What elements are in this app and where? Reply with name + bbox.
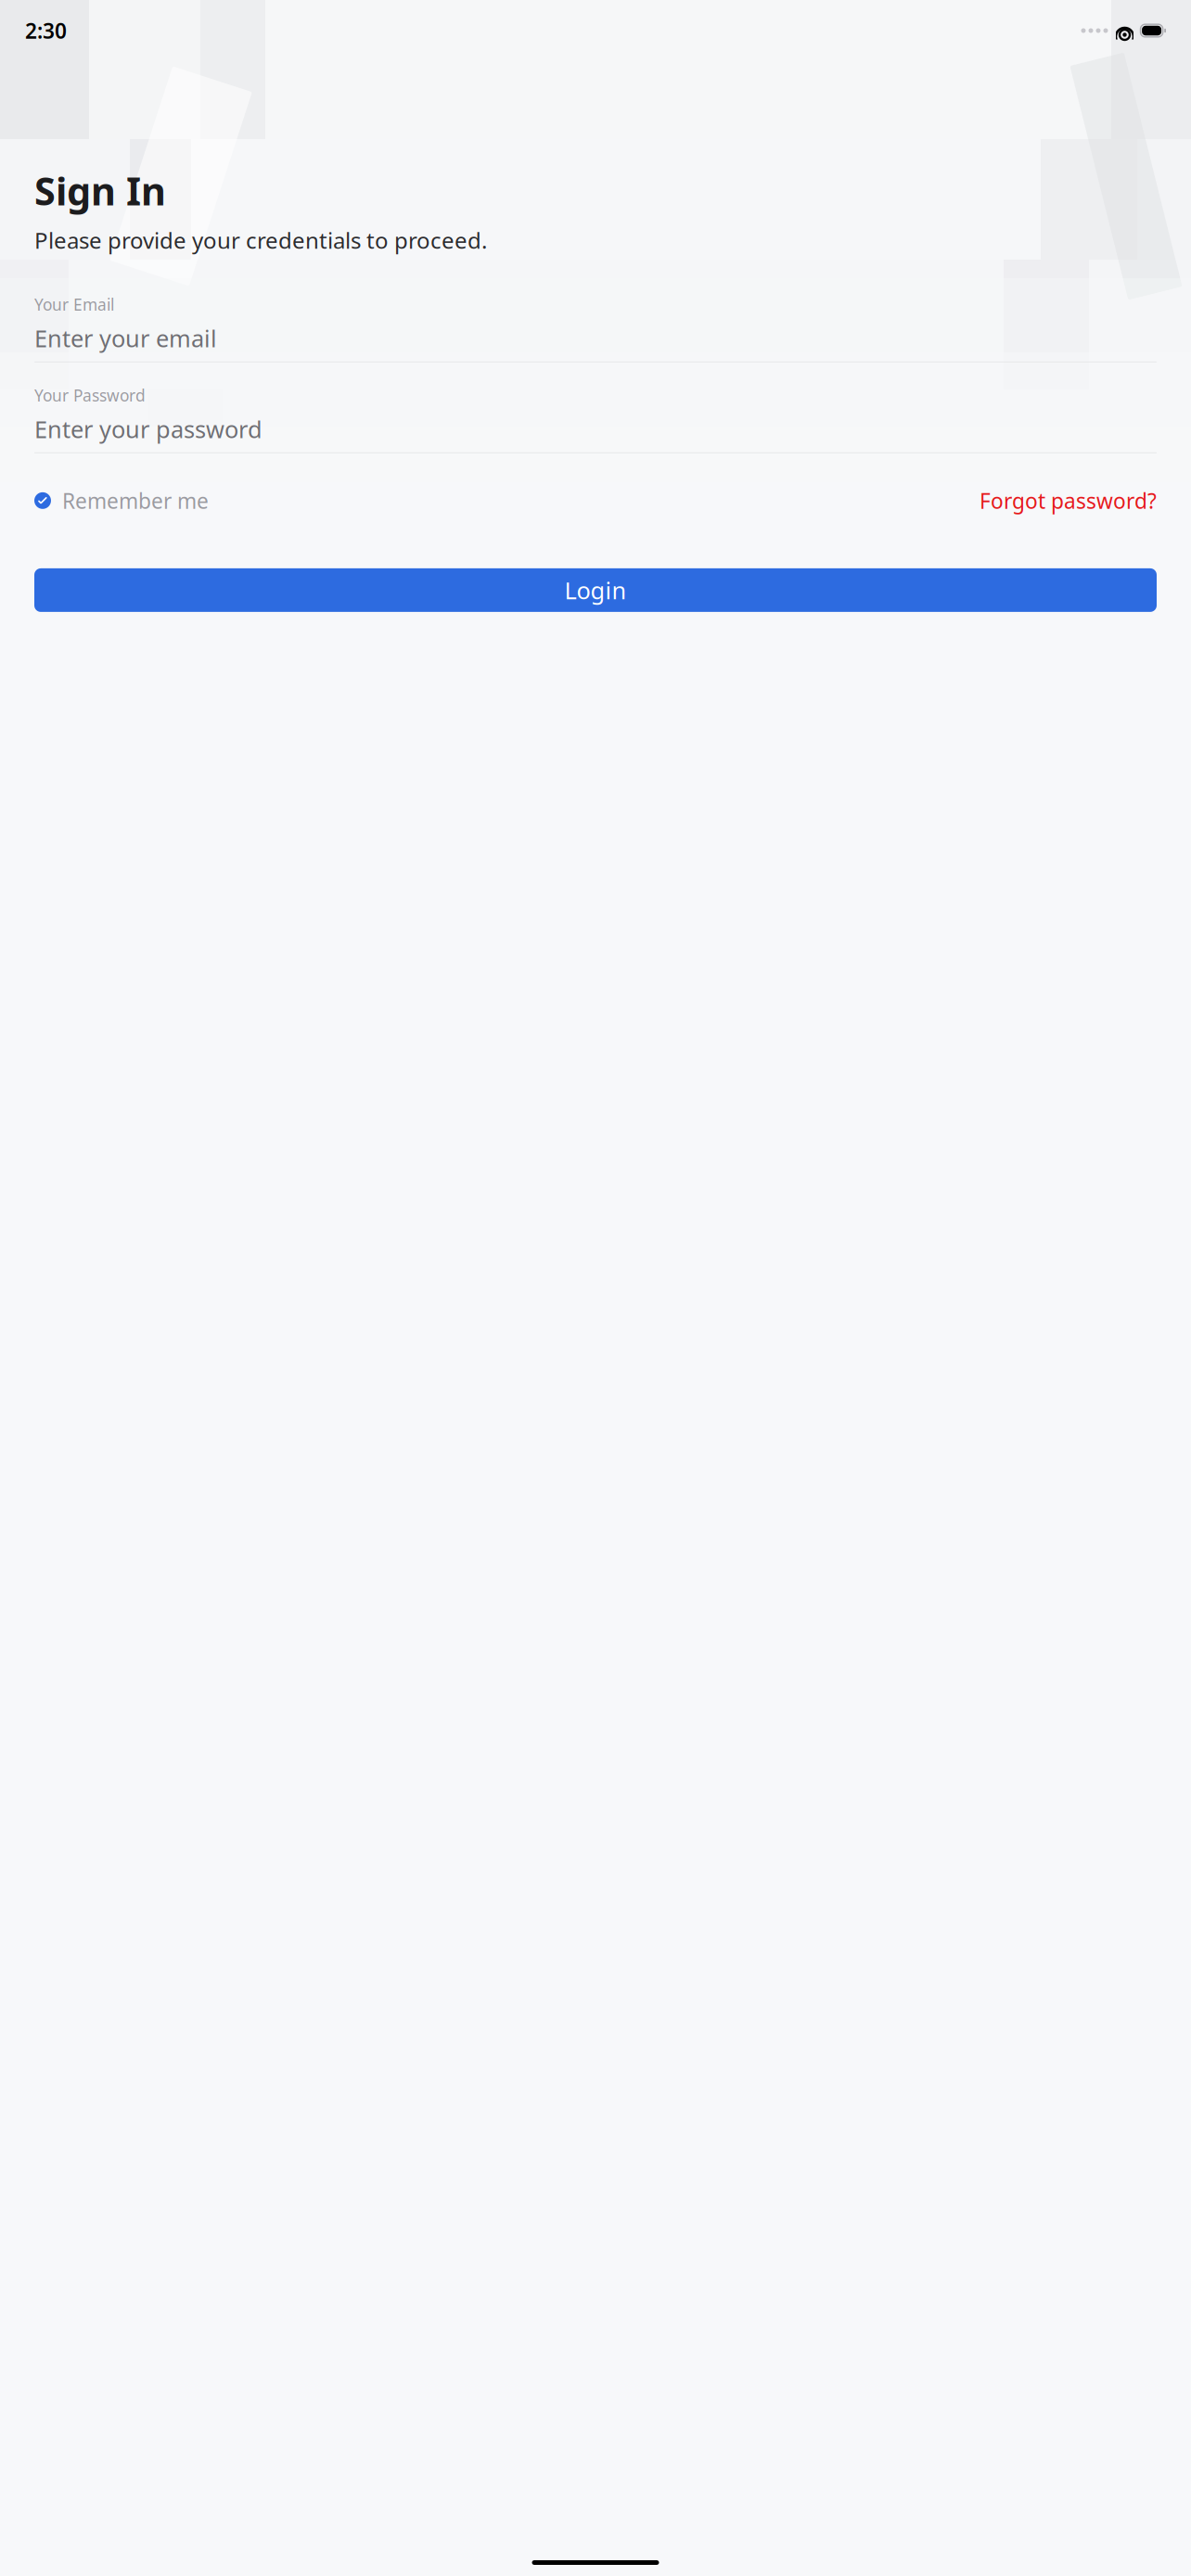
staticText: Your Password xyxy=(34,385,146,406)
staticText: 2:30 xyxy=(25,17,67,45)
staticText: Please provide your credentials to proce… xyxy=(34,225,487,255)
staticText: Your Email xyxy=(34,294,114,315)
staticText: Login xyxy=(564,575,627,606)
button[interactable]: Login xyxy=(34,568,1157,612)
staticText: Enter your email xyxy=(34,323,217,354)
staticText: Enter your password xyxy=(34,414,263,445)
button[interactable]: Remember me xyxy=(34,481,209,520)
button[interactable]: Forgot password? xyxy=(980,481,1157,520)
button[interactable]: Enter your password xyxy=(34,416,1157,453)
staticText: Forgot password? xyxy=(980,487,1157,515)
button[interactable]: Enter your email xyxy=(34,325,1157,362)
staticText: Sign In xyxy=(34,165,166,216)
staticText: Remember me xyxy=(62,487,209,515)
